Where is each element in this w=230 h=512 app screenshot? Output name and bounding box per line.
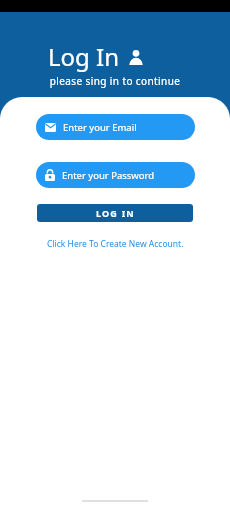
button[interactable]: Enter your Password	[36, 162, 195, 188]
staticText: LOG IN	[96, 207, 135, 219]
staticText: Enter your Email	[63, 121, 137, 134]
staticText: Log In	[48, 40, 120, 73]
staticText: please sing in to continue	[0, 74, 230, 88]
staticText: Enter your Password	[62, 169, 155, 182]
button[interactable]: Enter your Email	[36, 114, 195, 140]
button[interactable]: LOG IN	[37, 204, 193, 222]
button[interactable]: Click Here To Create New Account.	[47, 238, 184, 250]
